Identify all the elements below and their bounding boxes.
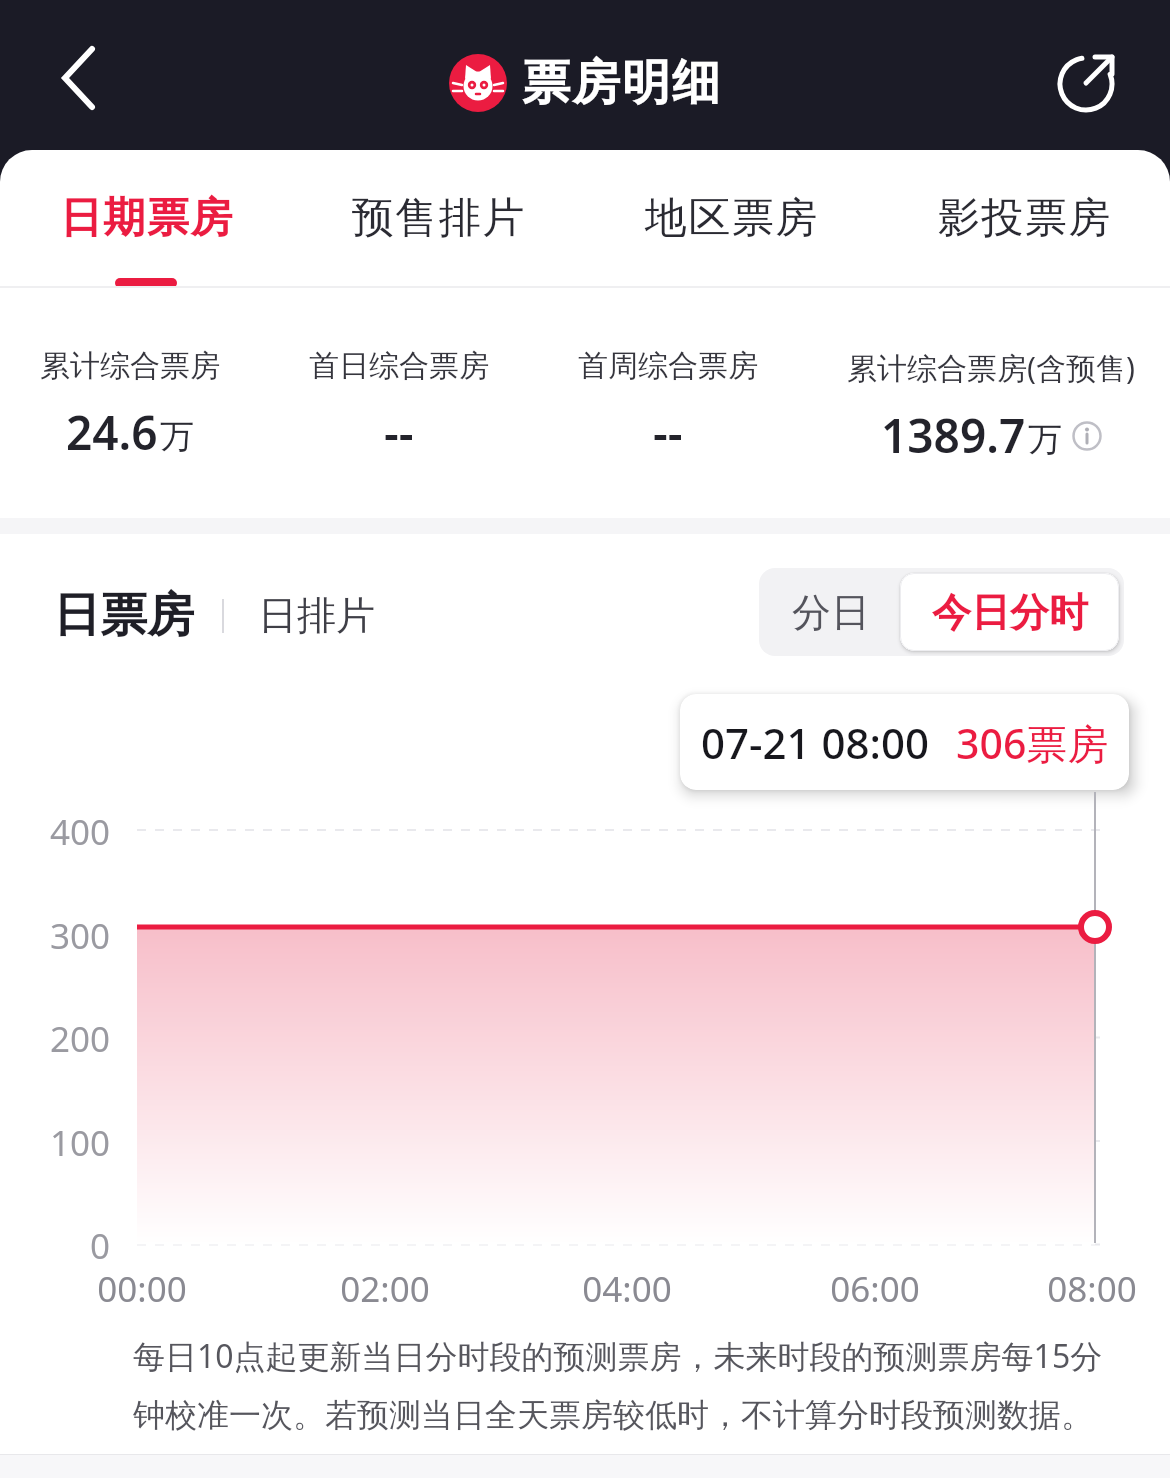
staticText: 00:00 <box>77 1265 207 1313</box>
staticText: 首周综合票房 <box>578 347 758 385</box>
staticText: 100 <box>30 1119 110 1167</box>
staticText: 02:00 <box>320 1265 450 1313</box>
staticText: 日票房 <box>53 586 194 645</box>
staticText: 07-21 08:00 <box>701 714 930 771</box>
staticText: 1389.7 <box>881 404 1026 467</box>
staticText: 08:00 <box>1027 1265 1157 1313</box>
staticText: 300 <box>30 912 110 960</box>
staticText: 06:00 <box>810 1265 940 1313</box>
staticText: 影投票房 <box>937 192 1111 245</box>
staticText: -- <box>384 401 414 464</box>
staticText: 306票房 <box>956 715 1109 771</box>
staticText: 万 <box>1028 418 1062 461</box>
staticText: 24.6 <box>66 401 158 464</box>
staticText: 每日10点起更新当日分时段的预测票房，未来时段的预测票房每15分 钟校准一次。若… <box>133 1334 1103 1435</box>
staticText: 今日分时 <box>932 588 1088 637</box>
button[interactable]: 分日 <box>759 568 902 656</box>
staticText: 预售排片 <box>351 192 525 245</box>
button[interactable] <box>1046 40 1126 120</box>
staticText: 04:00 <box>562 1265 692 1313</box>
button[interactable]: 今日分时 <box>900 573 1119 651</box>
staticText: 票房明细 <box>521 53 721 113</box>
button[interactable] <box>1072 421 1102 451</box>
button[interactable]: 地区票房 <box>584 150 877 287</box>
button[interactable]: 日期票房 <box>0 150 292 287</box>
button[interactable] <box>36 36 120 120</box>
button[interactable]: 影投票房 <box>877 150 1170 287</box>
button[interactable]: 预售排片 <box>292 150 584 287</box>
staticText: 首日综合票房 <box>309 347 489 385</box>
button[interactable]: 日排片 <box>258 591 375 640</box>
staticText: 日期票房 <box>59 192 233 245</box>
staticText: 0 <box>30 1222 110 1270</box>
staticText: 万 <box>160 415 194 458</box>
staticText: 地区票房 <box>644 192 818 245</box>
staticText: 累计综合票房(含预售) <box>847 347 1135 388</box>
staticText: 分日 <box>792 588 870 637</box>
staticText: 200 <box>30 1015 110 1063</box>
staticText: 累计综合票房 <box>40 347 220 385</box>
staticText: -- <box>653 401 683 464</box>
staticText: 400 <box>30 808 110 856</box>
